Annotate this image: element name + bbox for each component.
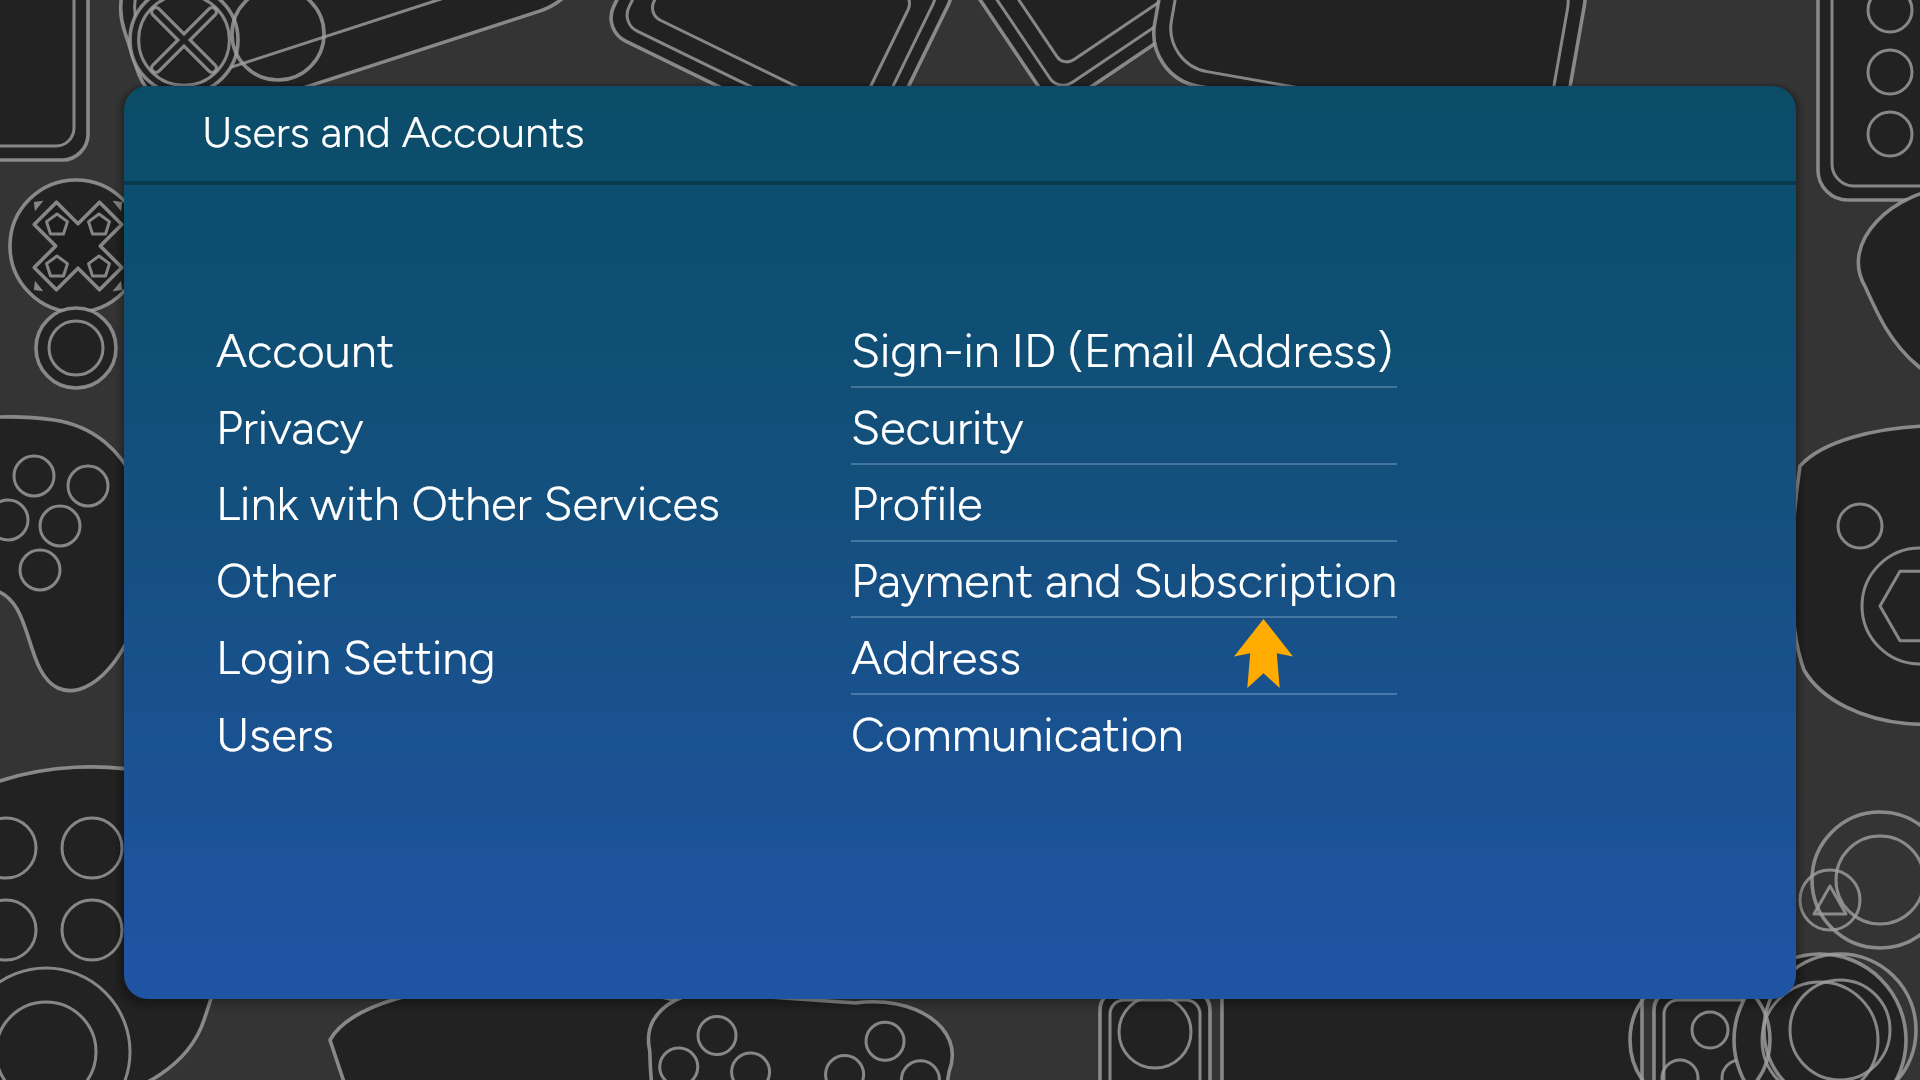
button[interactable]: Privacy — [184, 392, 804, 462]
staticText: Other — [216, 552, 337, 608]
button[interactable]: Other — [184, 545, 804, 615]
button[interactable]: Security — [851, 392, 1397, 462]
staticText: Login Setting — [216, 629, 496, 685]
staticText: Address — [851, 629, 1022, 685]
button[interactable]: Account — [184, 315, 804, 385]
staticText: Profile — [851, 475, 983, 531]
staticText: Account — [216, 322, 395, 378]
other: Pointer — [1234, 619, 1293, 688]
button[interactable]: Communication — [851, 699, 1397, 769]
button[interactable]: Users — [184, 699, 804, 769]
staticText: Link with Other Services — [216, 475, 720, 531]
staticText: Sign-in ID (Email Address) — [851, 322, 1393, 378]
button[interactable]: Address — [851, 622, 1397, 692]
staticText: Privacy — [216, 399, 364, 455]
button[interactable]: Sign-in ID (Email Address) — [851, 315, 1397, 385]
staticText: Users and Accounts — [202, 106, 585, 158]
staticText: Communication — [851, 706, 1184, 762]
button[interactable]: Payment and Subscription — [851, 545, 1397, 615]
staticText: Security — [851, 399, 1024, 455]
staticText: Users — [216, 706, 334, 762]
button[interactable]: Login Setting — [184, 622, 804, 692]
button[interactable]: Users and Accounts — [184, 88, 744, 176]
button[interactable]: Link with Other Services — [184, 468, 804, 538]
button[interactable]: Profile — [851, 468, 1397, 538]
staticText: Payment and Subscription — [851, 552, 1397, 608]
